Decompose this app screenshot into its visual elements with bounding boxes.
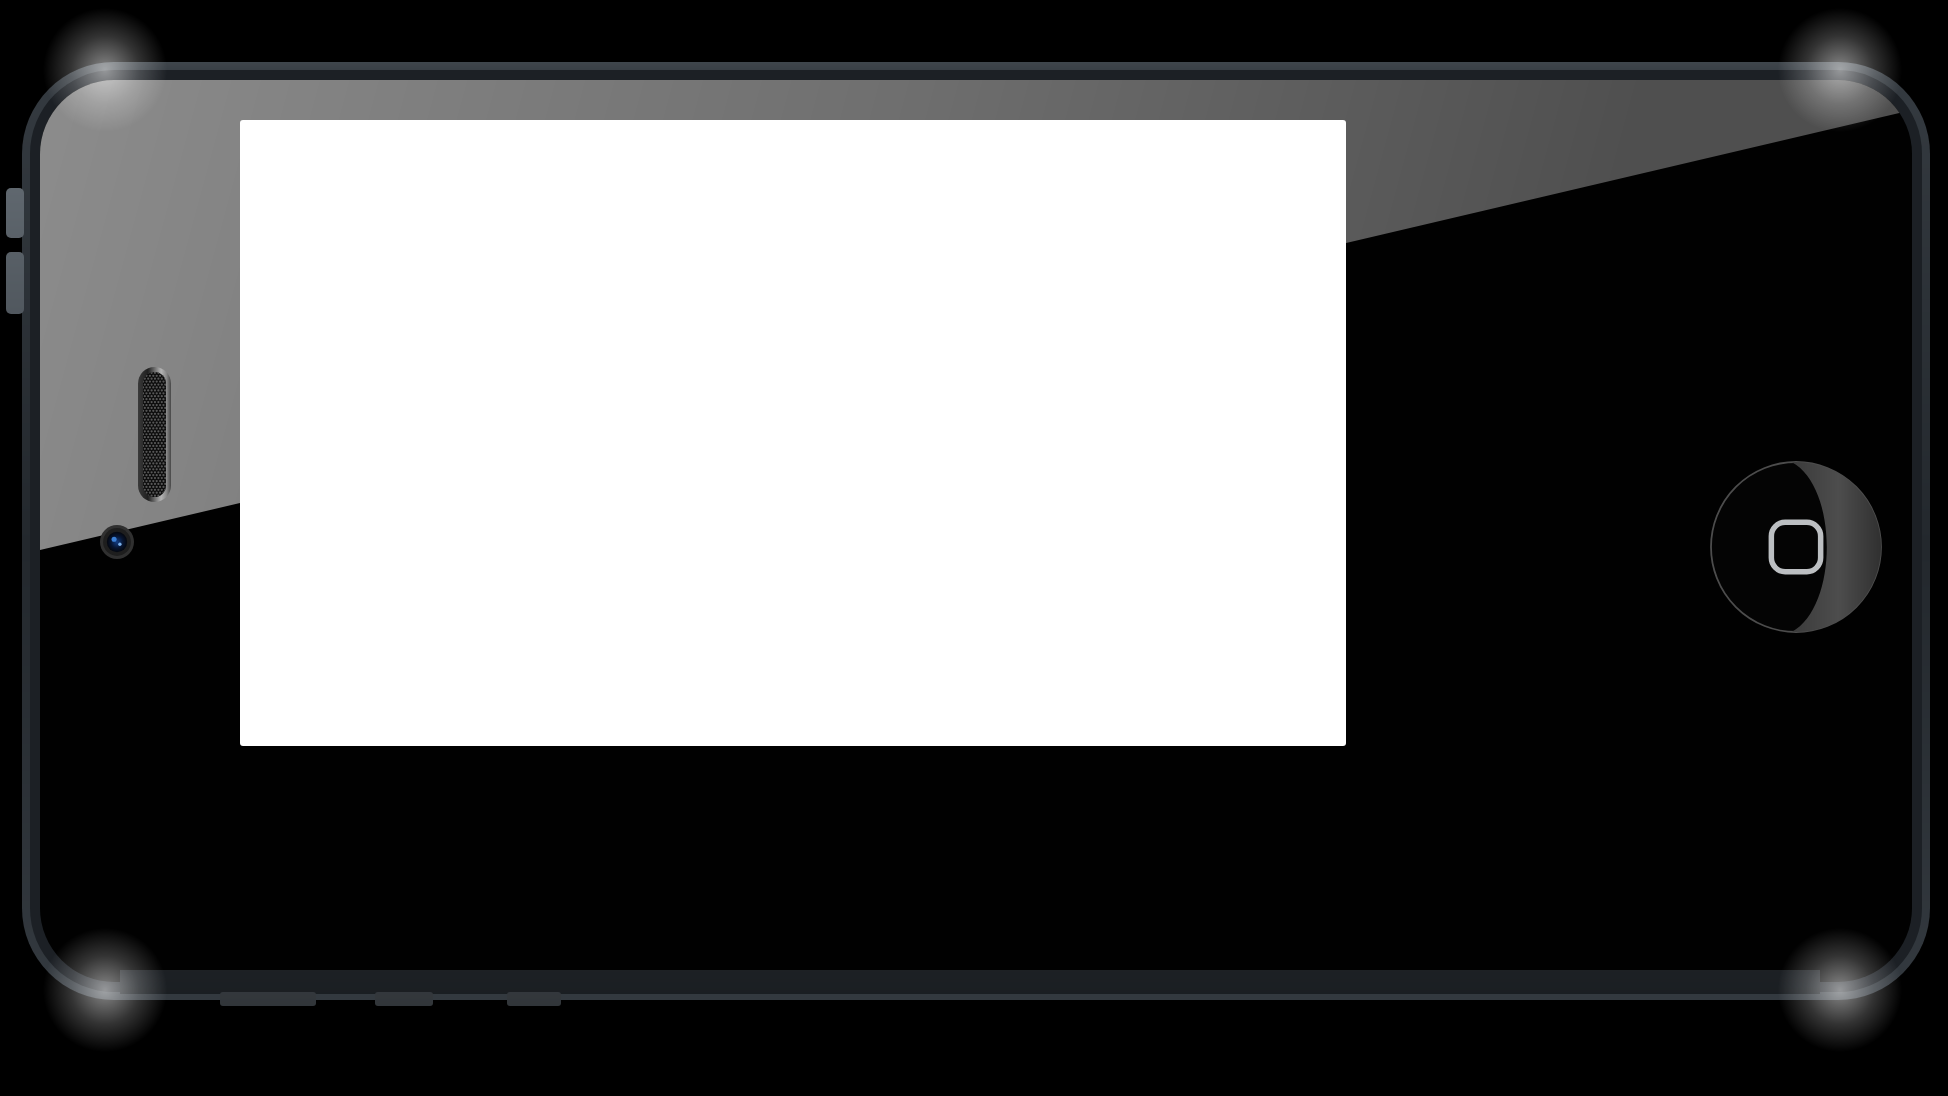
button[interactable]: Home: [1711, 462, 1881, 632]
